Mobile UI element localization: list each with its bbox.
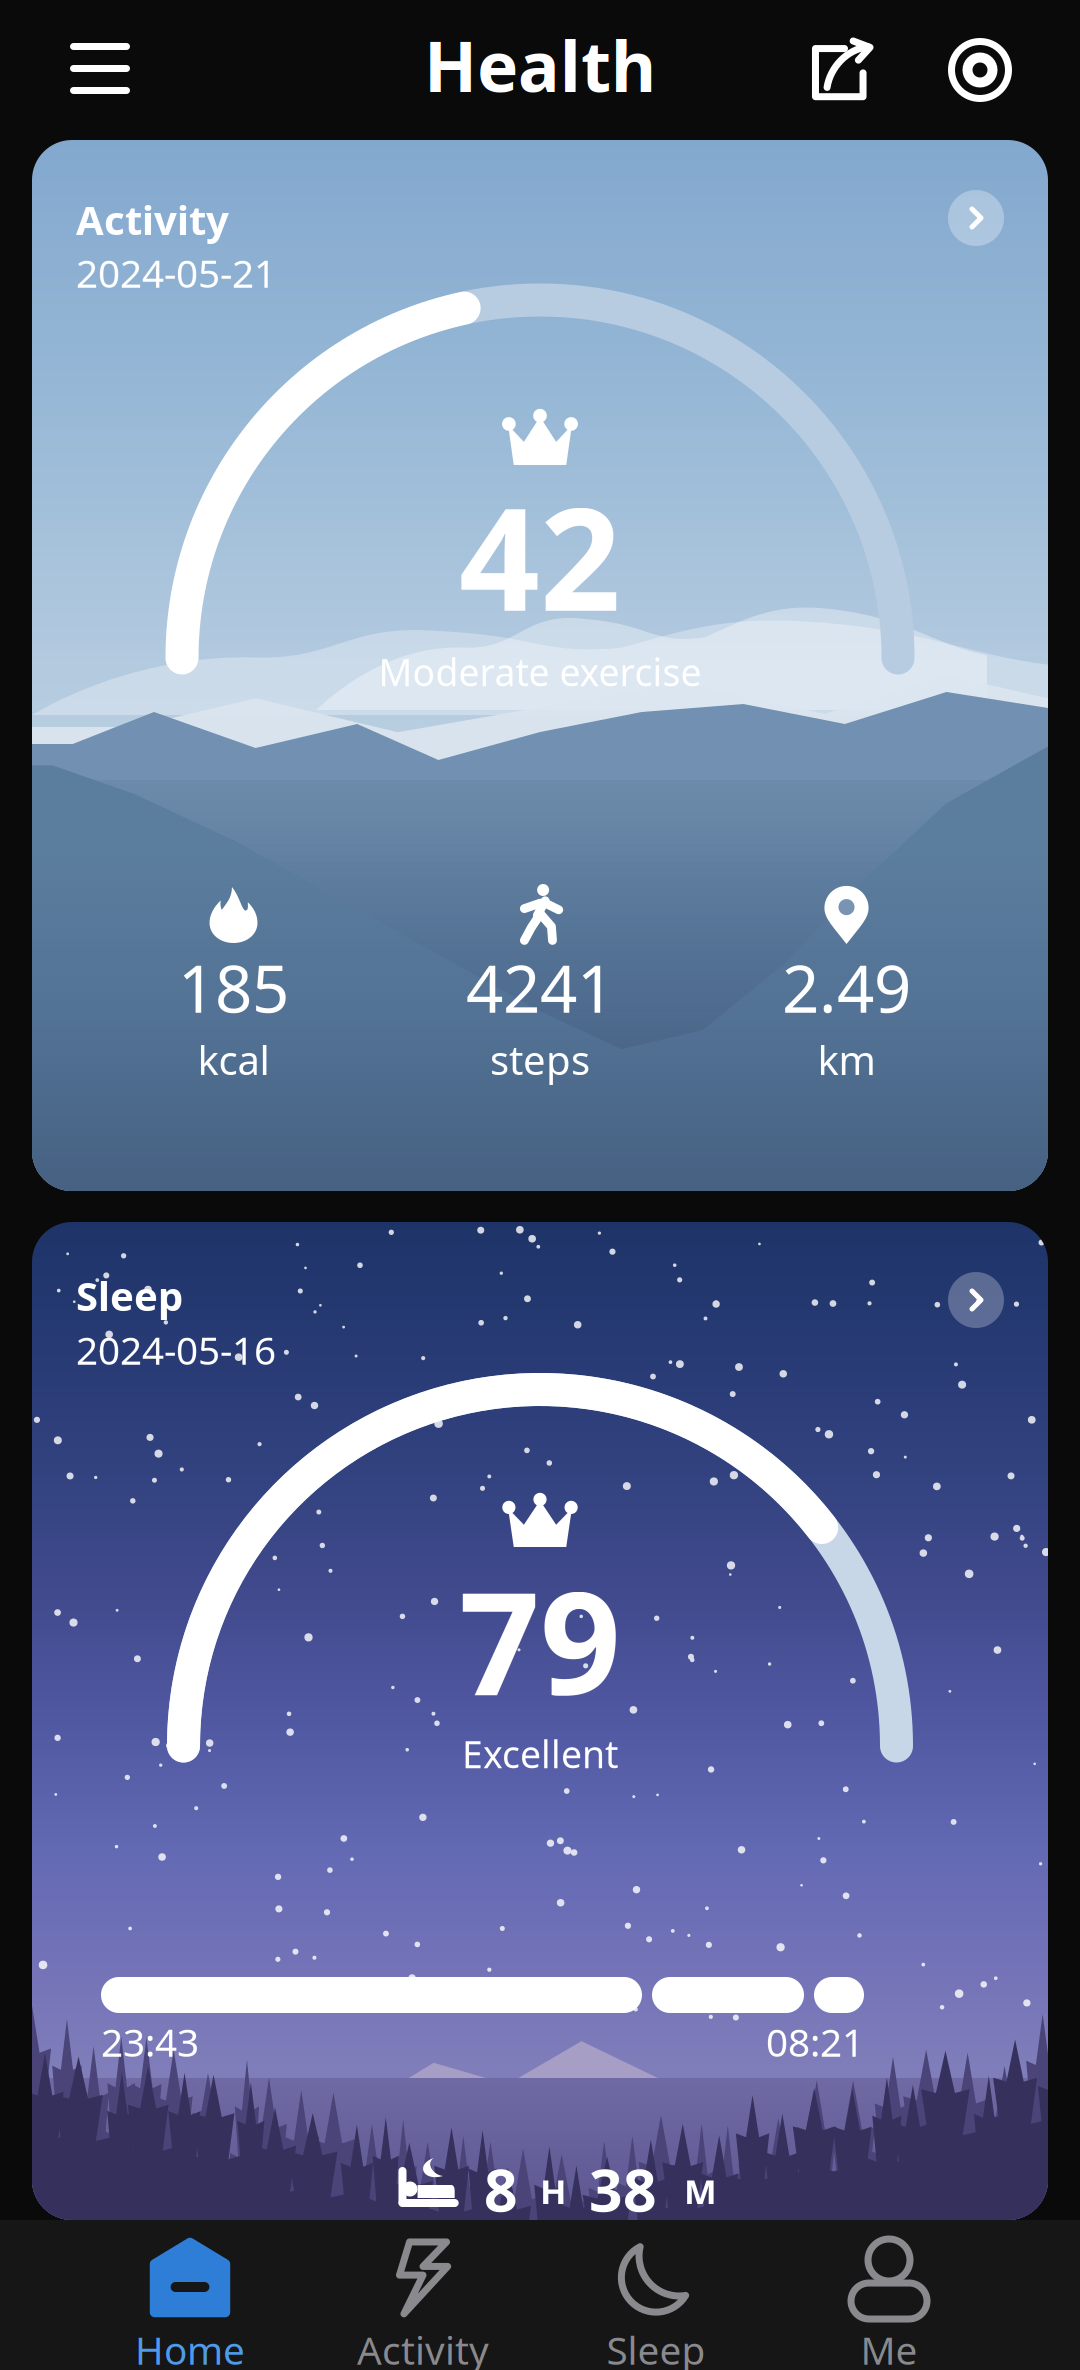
button[interactable]: Open Activity details [948,190,1004,246]
button[interactable]: Goals [951,41,1009,99]
staticText: 08:21 [766,2016,864,2067]
staticText: Activity [76,193,229,246]
staticText: 2024-05-16 [76,1324,276,1375]
staticText: 23:43 [101,2016,199,2067]
button[interactable]: Me [772,2220,1005,2370]
staticText: 42 [459,462,621,650]
staticText: 4241 [466,944,614,1031]
staticText: 2024-05-21 [76,247,276,298]
staticText: Sleep [76,1269,183,1322]
button[interactable]: Activity [32,140,1048,1191]
button[interactable]: Sleep [539,2220,772,2370]
button[interactable]: Home [73,2220,306,2370]
staticText: kcal [197,1033,269,1086]
staticText: 2.49 [782,944,911,1031]
button[interactable]: Activity [306,2220,539,2370]
staticText: 8 [484,2150,518,2228]
staticText: Home [135,2324,245,2370]
staticText: Excellent [462,1729,618,1779]
staticText: km [817,1033,875,1086]
staticText: 79 [459,1546,621,1734]
staticText: Health [424,19,656,111]
staticText: 185 [178,944,289,1031]
button[interactable]: Share [812,41,870,99]
staticText: 38 [589,2150,657,2228]
staticText: Activity [357,2324,489,2370]
button[interactable]: Menu [70,43,130,94]
staticText: Me [860,2324,917,2370]
staticText: steps [490,1033,590,1086]
staticText: H [540,2168,567,2214]
staticText: Sleep [606,2324,705,2370]
button[interactable]: Sleep [32,1222,1048,2220]
staticText: M [684,2168,717,2214]
button[interactable]: Open Sleep details [948,1272,1004,1328]
staticText: Moderate exercise [378,647,701,697]
